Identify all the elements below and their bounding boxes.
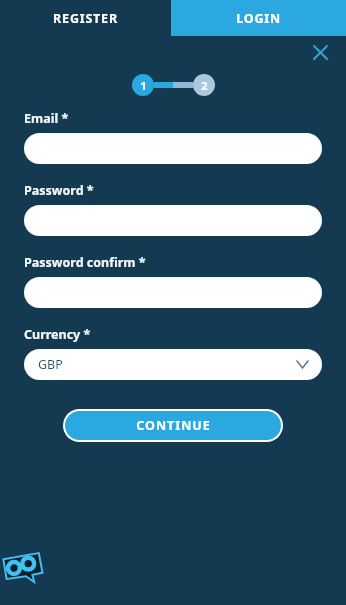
button[interactable]: LOGIN bbox=[171, 0, 346, 36]
staticText: REGISTER bbox=[53, 10, 118, 27]
staticText: CONTINUE bbox=[136, 417, 211, 434]
staticText: LOGIN bbox=[236, 10, 281, 27]
button[interactable] bbox=[24, 205, 322, 236]
button[interactable]: CONTINUE bbox=[65, 411, 281, 440]
button[interactable]: GBP bbox=[24, 349, 322, 380]
button[interactable]: 1 bbox=[132, 74, 154, 96]
staticText: 2 bbox=[201, 78, 208, 93]
staticText: GBP bbox=[38, 356, 63, 373]
button[interactable] bbox=[24, 133, 322, 164]
button[interactable]: Close bbox=[309, 41, 331, 63]
staticText: Password confirm * bbox=[24, 254, 146, 271]
button[interactable]: 2 bbox=[193, 74, 215, 96]
button[interactable]: REGISTER bbox=[0, 0, 171, 36]
button[interactable]: App logo bbox=[2, 549, 48, 583]
button[interactable] bbox=[24, 277, 322, 308]
staticText: Email * bbox=[24, 110, 69, 127]
staticText: Currency * bbox=[24, 326, 91, 343]
staticText: 1 bbox=[140, 78, 147, 93]
staticText: Password * bbox=[24, 182, 94, 199]
